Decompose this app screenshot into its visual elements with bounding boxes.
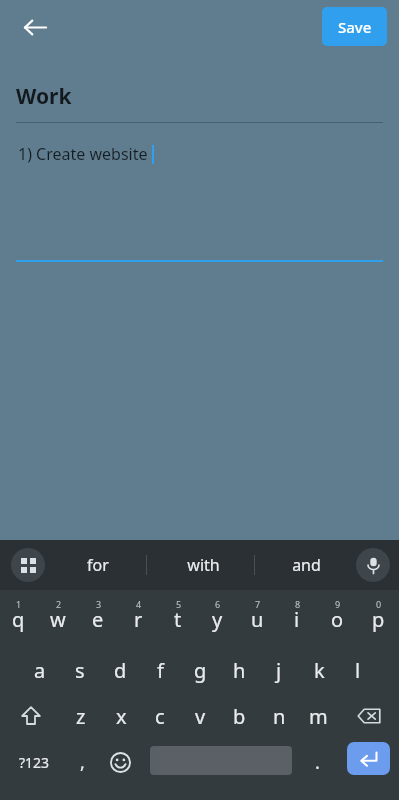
- staticText: 0: [376, 598, 382, 610]
- button[interactable]: h: [220, 647, 258, 693]
- staticText: y: [212, 606, 223, 633]
- staticText: j: [276, 657, 282, 684]
- button[interactable]: with: [163, 540, 243, 590]
- staticText: g: [194, 657, 207, 684]
- button[interactable]: Save: [322, 7, 387, 46]
- staticText: 8: [295, 598, 301, 610]
- button[interactable]: p: [359, 595, 397, 643]
- button[interactable]: x: [102, 693, 140, 739]
- button[interactable]: Toolbar: [11, 548, 45, 582]
- button[interactable]: v: [181, 693, 219, 739]
- button[interactable]: ?123: [10, 741, 58, 783]
- staticText: w: [50, 606, 66, 633]
- button[interactable]: q: [0, 595, 37, 643]
- staticText: f: [157, 657, 164, 684]
- button[interactable]: for: [58, 540, 138, 590]
- button[interactable]: Back: [14, 6, 56, 48]
- button[interactable]: o: [318, 595, 356, 643]
- button[interactable]: i: [278, 595, 316, 643]
- button[interactable]: t: [159, 595, 197, 643]
- staticText: Work: [16, 82, 72, 111]
- staticText: k: [314, 657, 325, 684]
- button[interactable]: c: [141, 693, 179, 739]
- staticText: 3: [96, 598, 102, 610]
- staticText: l: [355, 657, 361, 684]
- button[interactable]: w: [39, 595, 77, 643]
- button[interactable]: s: [61, 647, 99, 693]
- staticText: n: [273, 703, 286, 730]
- staticText: 1) Create website: [18, 143, 148, 165]
- staticText: m: [309, 703, 328, 730]
- staticText: r: [134, 606, 143, 633]
- staticText: i: [294, 606, 300, 633]
- button[interactable]: k: [300, 647, 338, 693]
- staticText: o: [331, 606, 344, 633]
- staticText: c: [155, 703, 165, 730]
- staticText: v: [195, 703, 206, 730]
- button[interactable]: m: [299, 693, 337, 739]
- button[interactable]: Emoji: [102, 741, 138, 783]
- button[interactable]: l: [339, 647, 377, 693]
- staticText: 2: [56, 598, 62, 610]
- staticText: s: [75, 657, 85, 684]
- staticText: ?123: [19, 753, 50, 772]
- button[interactable]: Voice input: [356, 548, 390, 582]
- staticText: h: [233, 657, 246, 684]
- staticText: with: [187, 554, 220, 576]
- button[interactable]: n: [260, 693, 298, 739]
- staticText: .: [315, 750, 320, 775]
- staticText: ,: [80, 750, 85, 775]
- button[interactable]: y: [198, 595, 236, 643]
- button[interactable]: Shift: [8, 693, 54, 739]
- staticText: x: [116, 703, 127, 730]
- staticText: a: [34, 657, 46, 684]
- staticText: for: [87, 554, 109, 576]
- staticText: q: [12, 606, 25, 633]
- staticText: p: [372, 606, 385, 633]
- staticText: u: [251, 606, 264, 633]
- button[interactable]: ,: [64, 741, 100, 783]
- staticText: 1: [16, 598, 22, 610]
- button[interactable]: u: [238, 595, 276, 643]
- staticText: 6: [215, 598, 221, 610]
- button[interactable]: d: [101, 647, 139, 693]
- staticText: 9: [335, 598, 341, 610]
- button[interactable]: b: [220, 693, 258, 739]
- button[interactable]: j: [260, 647, 298, 693]
- button[interactable]: and: [266, 540, 346, 590]
- button[interactable]: Backspace: [346, 693, 392, 739]
- staticText: z: [76, 703, 86, 730]
- button[interactable]: r: [119, 595, 157, 643]
- button[interactable]: Enter: [347, 742, 390, 775]
- staticText: b: [233, 703, 246, 730]
- button[interactable]: a: [21, 647, 59, 693]
- staticText: 7: [255, 598, 261, 610]
- button[interactable]: f: [141, 647, 179, 693]
- button[interactable]: e: [79, 595, 117, 643]
- button[interactable]: g: [181, 647, 219, 693]
- staticText: 4: [136, 598, 142, 610]
- staticText: Save: [338, 17, 372, 37]
- button[interactable]: z: [62, 693, 100, 739]
- staticText: d: [114, 657, 127, 684]
- staticText: 5: [176, 598, 182, 610]
- staticText: e: [92, 606, 104, 633]
- button[interactable]: .: [300, 741, 334, 783]
- staticText: and: [292, 554, 321, 576]
- staticText: t: [174, 606, 182, 633]
